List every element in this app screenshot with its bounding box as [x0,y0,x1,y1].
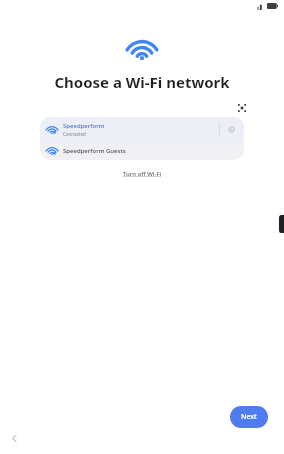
staticText: Speedperform [63,122,105,130]
staticText: Turn off Wi-Fi [123,170,162,178]
staticText: Next [241,412,257,422]
button[interactable]: Back [6,430,22,446]
button[interactable]: Network settings [226,124,237,135]
button[interactable]: Speedperform Guests [40,142,244,160]
staticText: Choose a Wi-Fi network [54,72,230,92]
staticText: Speedperform Guests [63,147,126,155]
staticText: Connected [63,131,86,137]
button[interactable]: Next [230,406,268,428]
button[interactable]: Speedperform [40,117,244,142]
button[interactable]: Add network [236,102,248,114]
button[interactable]: Turn off Wi-Fi [117,168,168,180]
